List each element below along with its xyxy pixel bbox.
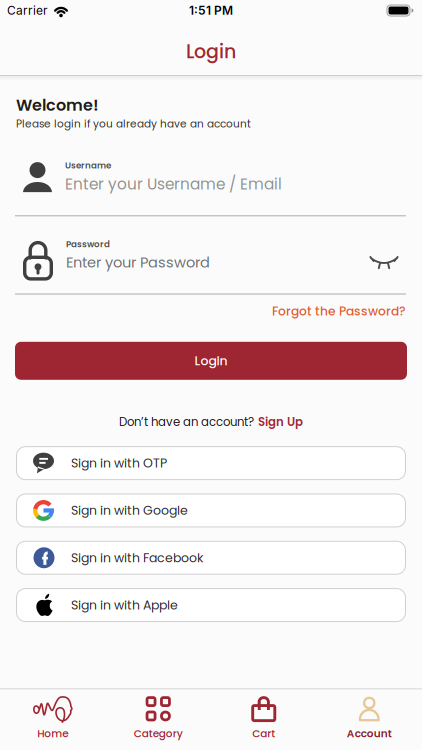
button[interactable]: Sign in with OTP — [16, 446, 406, 480]
button[interactable]: Sign Up — [258, 414, 303, 430]
button[interactable]: Home — [0, 695, 105, 741]
staticText: Login — [194, 352, 227, 369]
staticText: Welcome! — [16, 94, 99, 116]
staticText: 1:51 PM — [189, 3, 233, 18]
staticText: Account — [347, 726, 392, 741]
staticText: Don’t have an account? — [119, 414, 254, 430]
button[interactable]: Category — [105, 695, 211, 741]
staticText: Cart — [252, 726, 275, 741]
staticText: Carrier — [7, 3, 48, 18]
staticText: Sign in with OTP — [71, 454, 167, 472]
staticText: Please login if you already have an acco… — [16, 116, 251, 131]
button[interactable]: Sign in with Facebook — [16, 541, 406, 575]
button[interactable]: Sign in with Google — [16, 493, 406, 527]
staticText: Sign in with Facebook — [71, 549, 203, 566]
button[interactable]: Login — [15, 342, 407, 380]
staticText: Home — [37, 726, 68, 741]
button[interactable]: Forgot the Password? — [272, 303, 406, 320]
staticText: Enter your Username / Email — [65, 173, 282, 195]
staticText: Category — [134, 726, 183, 741]
staticText: Enter your Password — [66, 252, 210, 273]
staticText: Login — [186, 38, 236, 65]
button[interactable]: Account — [316, 695, 422, 741]
button[interactable]: Cart — [211, 695, 316, 741]
staticText: Sign Up — [258, 414, 303, 430]
staticText: Sign in with Google — [71, 502, 188, 519]
button[interactable]: Show password — [370, 248, 398, 262]
staticText: Password — [66, 238, 110, 250]
staticText: Sign in with Apple — [71, 596, 178, 614]
button[interactable]: Sign in with Apple — [16, 588, 406, 622]
staticText: Username — [65, 159, 111, 171]
staticText: Forgot the Password? — [272, 303, 406, 320]
